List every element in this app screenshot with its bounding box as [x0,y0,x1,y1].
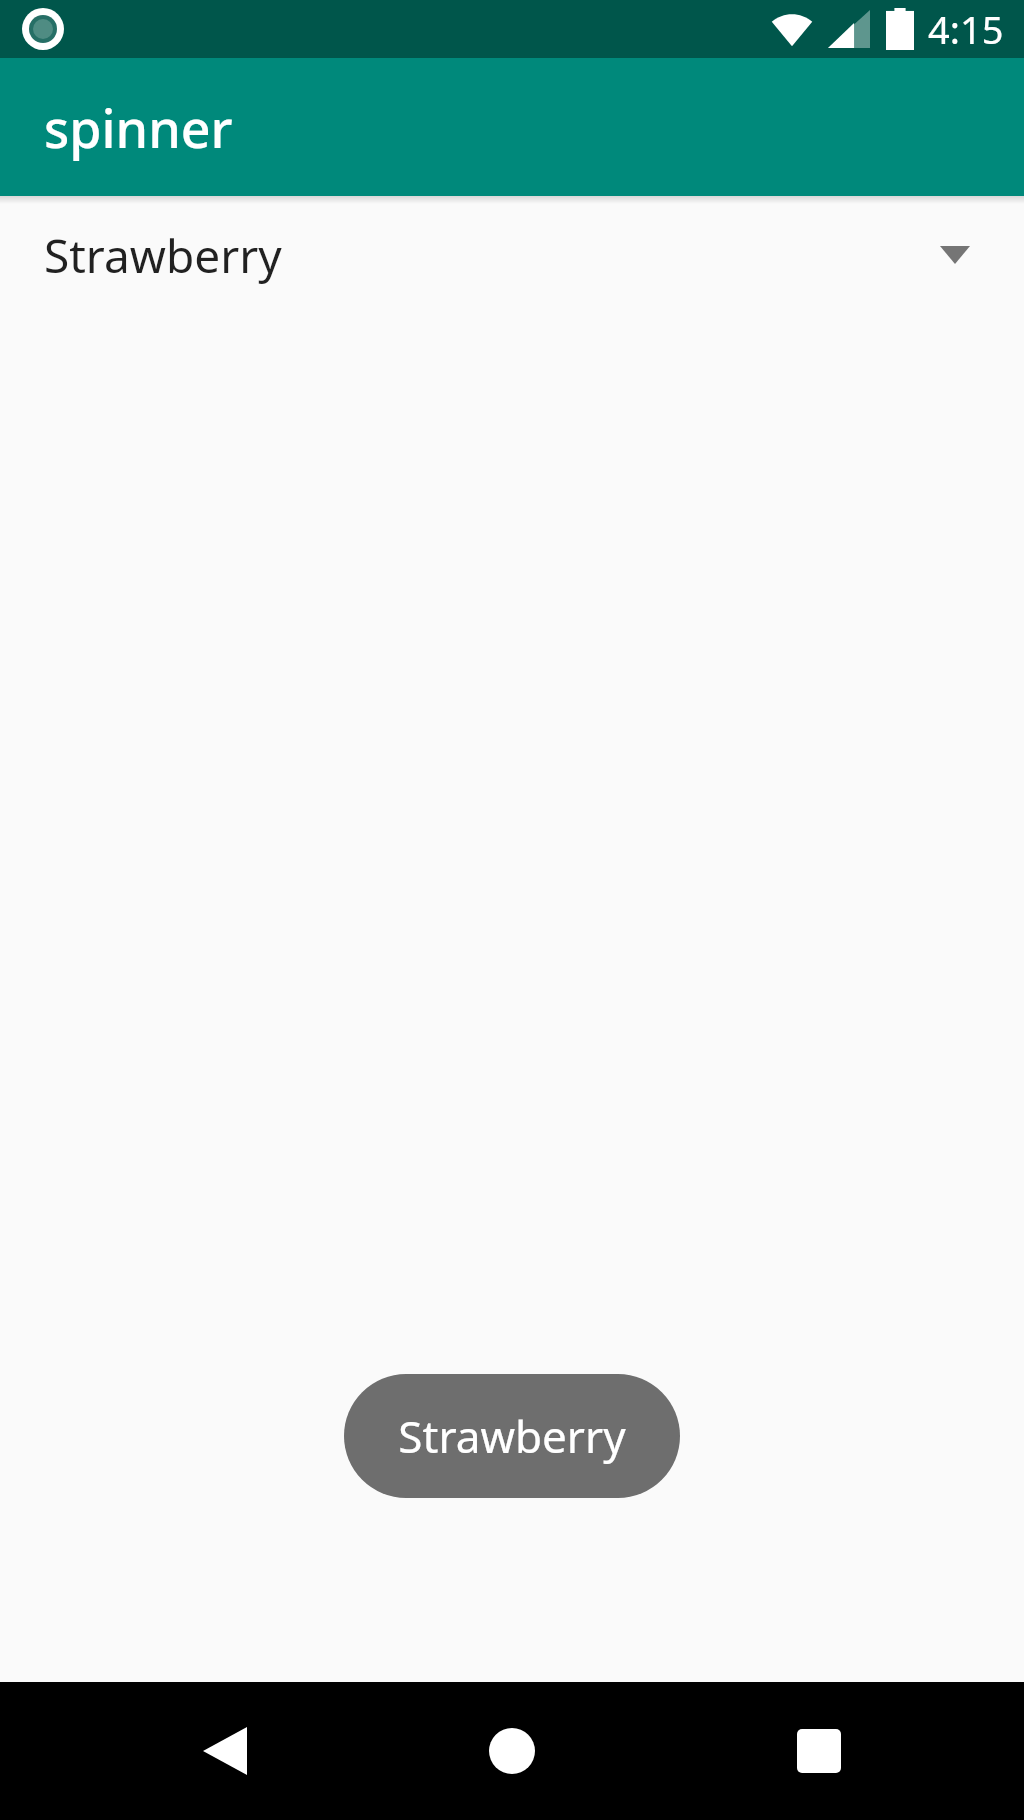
button[interactable]: Strawberry [0,196,1024,314]
button[interactable]: Recent apps [754,1686,884,1816]
staticText: spinner [44,92,233,163]
button[interactable]: Home [447,1686,577,1816]
staticText: Strawberry [44,224,940,287]
button[interactable]: Strawberry [344,1374,680,1498]
staticText: 4:15 [928,3,1004,55]
button[interactable]: Back [160,1686,290,1816]
staticText: Strawberry [398,1406,626,1466]
other: Open dropdown [940,246,970,264]
